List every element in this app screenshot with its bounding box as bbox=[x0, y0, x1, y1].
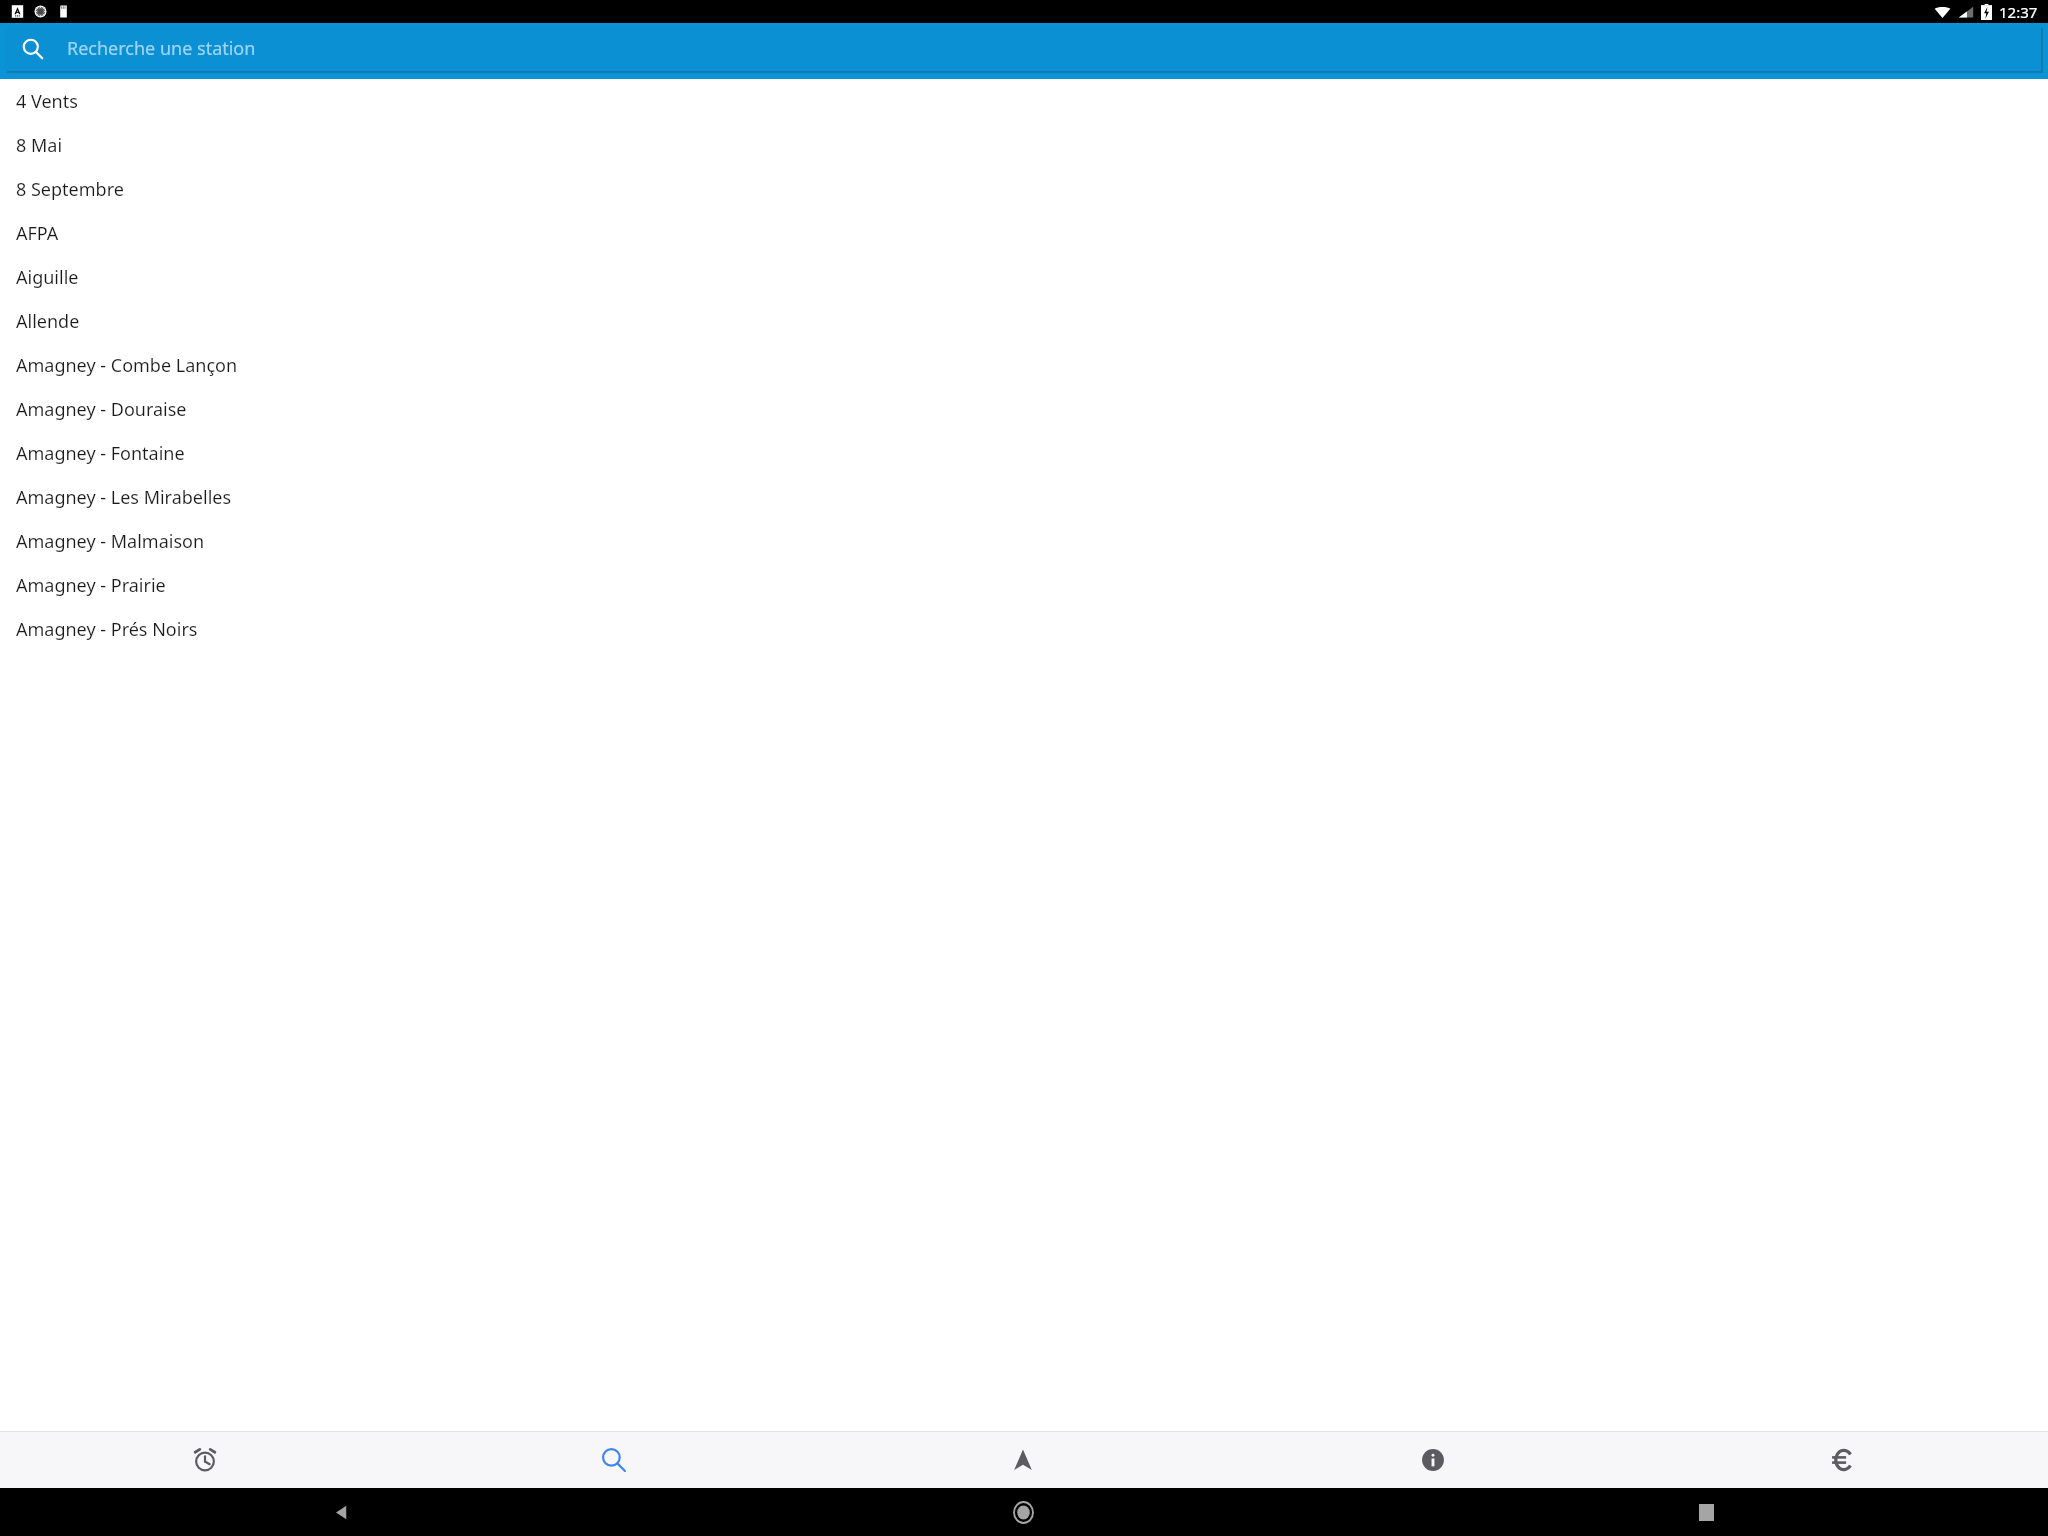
button[interactable]: Amagney - Prairie bbox=[0, 563, 2048, 607]
staticText: Amagney - Malmaison bbox=[16, 529, 205, 554]
button[interactable]: 8 Mai bbox=[0, 123, 2048, 167]
button[interactable]: Navigate bbox=[818, 1432, 1228, 1488]
button[interactable]: Fares bbox=[1638, 1432, 2048, 1488]
staticText: Amagney - Les Mirabelles bbox=[16, 485, 232, 510]
other: Search bbox=[21, 37, 45, 61]
staticText: Recherche une station bbox=[67, 36, 256, 61]
button[interactable]: 4 Vents bbox=[0, 79, 2048, 123]
button[interactable]: Allende bbox=[0, 299, 2048, 343]
staticText: Aiguille bbox=[16, 265, 79, 290]
staticText: Amagney - Combe Lançon bbox=[16, 353, 238, 378]
button[interactable]: Amagney - Les Mirabelles bbox=[0, 475, 2048, 519]
button[interactable]: Search bbox=[5, 26, 2041, 71]
button[interactable]: AFPA bbox=[0, 211, 2048, 255]
staticText: AFPA bbox=[16, 221, 59, 246]
button[interactable]: Amagney - Combe Lançon bbox=[0, 343, 2048, 387]
staticText: 8 Mai bbox=[16, 133, 63, 158]
staticText: 4 Vents bbox=[16, 89, 78, 114]
staticText: 8 Septembre bbox=[16, 177, 124, 202]
staticText: 12:37 bbox=[1999, 2, 2038, 22]
button[interactable]: Info bbox=[1228, 1432, 1638, 1488]
button[interactable]: Amagney - Malmaison bbox=[0, 519, 2048, 563]
staticText: Allende bbox=[16, 309, 80, 334]
staticText: Amagney - Douraise bbox=[16, 397, 187, 422]
button[interactable]: 8 Septembre bbox=[0, 167, 2048, 211]
staticText: Amagney - Fontaine bbox=[16, 441, 185, 466]
button[interactable]: Aiguille bbox=[0, 255, 2048, 299]
button[interactable]: Amagney - Douraise bbox=[0, 387, 2048, 431]
button[interactable]: Search bbox=[409, 1432, 818, 1488]
button[interactable]: Amagney - Fontaine bbox=[0, 431, 2048, 475]
button[interactable]: Recent apps bbox=[1365, 1488, 2048, 1536]
staticText: Amagney - Prairie bbox=[16, 573, 166, 598]
button[interactable]: Alarms bbox=[0, 1432, 409, 1488]
button[interactable]: Back bbox=[0, 1488, 682, 1536]
staticText: Amagney - Prés Noirs bbox=[16, 617, 198, 642]
button[interactable]: Home bbox=[682, 1488, 1365, 1536]
button[interactable]: Amagney - Prés Noirs bbox=[0, 607, 2048, 651]
